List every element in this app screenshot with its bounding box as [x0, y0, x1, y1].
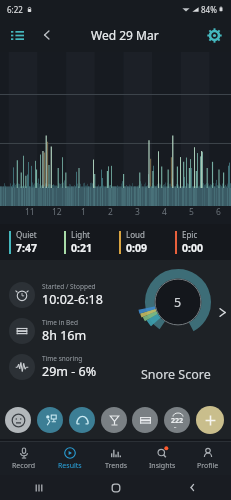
button[interactable]: Add tag	[196, 406, 224, 434]
button[interactable]: Nasal strip	[69, 407, 95, 433]
button[interactable]: Light	[64, 229, 119, 255]
staticText: Trends	[105, 461, 128, 471]
staticText: 0:00	[182, 241, 203, 255]
staticText: 10:02-6:18	[42, 291, 103, 308]
staticText: 5	[174, 294, 182, 311]
staticText: 4	[162, 206, 167, 218]
staticText: Wed 29 Mar	[91, 27, 159, 43]
staticText: Profile	[197, 461, 219, 471]
button[interactable]: Profile	[185, 442, 231, 475]
staticText: Time in Bed	[42, 318, 78, 327]
staticText: 3	[135, 206, 140, 218]
staticText: 6:22	[7, 4, 23, 15]
button[interactable]: Insights	[139, 442, 185, 475]
staticText: 6	[216, 206, 221, 218]
staticText: 5	[189, 206, 194, 218]
button[interactable]: Time in Bed	[9, 318, 87, 344]
staticText: Record	[12, 461, 35, 471]
button[interactable]: Bed	[132, 407, 158, 433]
button[interactable]: Menu	[0, 18, 34, 52]
button[interactable]: Trends	[93, 442, 139, 475]
staticText: Insights	[149, 461, 176, 471]
button[interactable]: Epic	[175, 229, 231, 255]
button[interactable]: Quiet	[9, 229, 64, 255]
staticText: Light	[71, 229, 91, 240]
staticText: Started / Stopped	[42, 282, 96, 291]
staticText: 2	[108, 206, 113, 218]
staticText: Time snoring	[42, 354, 83, 363]
button[interactable]: Bedroom	[37, 407, 63, 433]
staticText: 0:21	[71, 241, 92, 255]
staticText: Quiet	[16, 229, 37, 240]
staticText: lbs	[174, 426, 181, 428]
button[interactable]: Started / Stopped	[9, 282, 103, 308]
staticText: 84%	[201, 4, 217, 15]
button[interactable]: More details	[213, 260, 231, 401]
staticText: Snore Score	[141, 366, 211, 383]
staticText: Results	[58, 461, 82, 471]
button[interactable]: Settings	[197, 18, 231, 52]
staticText: 12	[52, 206, 62, 218]
staticText: 222	[171, 416, 184, 426]
staticText: Epic	[182, 229, 198, 240]
button[interactable]: Results	[47, 442, 93, 475]
staticText: 7:47	[16, 241, 37, 255]
staticText: 8h 16m	[42, 327, 87, 344]
staticText: 11	[25, 206, 35, 218]
button[interactable]: Back	[34, 18, 60, 52]
button[interactable]: Loud	[119, 229, 175, 255]
button[interactable]: Mood	[5, 407, 31, 433]
button[interactable]: Time snoring	[9, 354, 97, 380]
button[interactable]: Record	[0, 442, 47, 475]
button[interactable]: Weight	[164, 407, 190, 433]
staticText: 0:09	[126, 241, 147, 255]
staticText: 29m - 6%	[42, 363, 97, 380]
staticText: Loud	[126, 229, 145, 240]
staticText: 1	[81, 206, 86, 218]
button[interactable]: Alcohol	[101, 407, 127, 433]
